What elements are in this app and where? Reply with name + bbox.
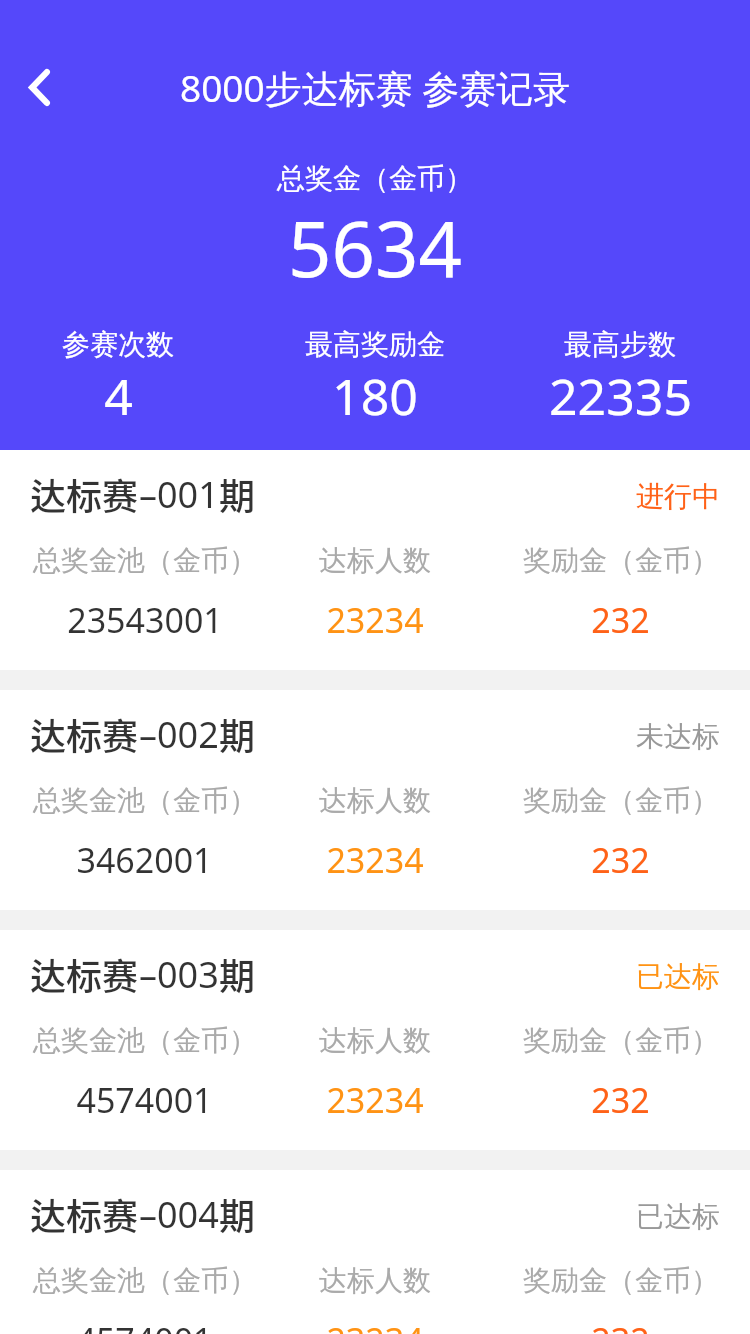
staticText: –002 <box>139 710 219 759</box>
button[interactable]: Back <box>6 45 72 129</box>
staticText: 180 <box>332 362 418 430</box>
staticText: 期 <box>219 468 256 520</box>
staticText: 232 <box>591 1317 650 1334</box>
staticText: –003 <box>139 950 219 999</box>
staticText: –001 <box>139 470 219 519</box>
staticText: 期 <box>219 948 256 1000</box>
staticText: 总奖金池（金币） <box>33 1263 257 1298</box>
staticText: 已达标 <box>636 959 720 994</box>
staticText: 232 <box>591 1077 650 1123</box>
staticText: 达标人数 <box>319 1023 431 1058</box>
staticText: 奖励金（金币） <box>523 783 719 818</box>
staticText: 达标人数 <box>319 783 431 818</box>
staticText: 总奖金池（金币） <box>33 543 257 578</box>
staticText: –004 <box>139 1190 219 1239</box>
staticText: 奖励金（金币） <box>523 1263 719 1298</box>
button[interactable]: 达标赛 <box>0 930 750 1150</box>
staticText: 期 <box>219 1188 256 1240</box>
staticText: 总奖金池（金币） <box>33 1023 257 1058</box>
button[interactable]: 达标赛 <box>0 1170 750 1334</box>
staticText: 232 <box>591 597 650 643</box>
staticText: 达标人数 <box>319 543 431 578</box>
staticText: 22335 <box>549 362 692 430</box>
staticText: 23234 <box>326 837 424 883</box>
staticText: 期 <box>219 708 256 760</box>
staticText: 已达标 <box>636 1199 720 1234</box>
staticText: 参赛次数 <box>62 327 174 362</box>
staticText: 未达标 <box>636 719 720 754</box>
staticText: 4574001 <box>76 1317 213 1334</box>
staticText: 奖励金（金币） <box>523 543 719 578</box>
staticText: 4574001 <box>76 1077 213 1123</box>
staticText: 5634 <box>0 196 750 300</box>
staticText: 4 <box>104 362 133 430</box>
staticText: 23543001 <box>67 597 223 643</box>
button[interactable]: 达标赛 <box>0 450 750 670</box>
staticText: 奖励金（金币） <box>523 1023 719 1058</box>
staticText: 总奖金（金币） <box>0 161 750 196</box>
staticText: 3462001 <box>76 837 213 883</box>
staticText: 23234 <box>326 1077 424 1123</box>
staticText: 达标赛 <box>30 708 139 760</box>
staticText: 进行中 <box>636 479 720 514</box>
staticText: 232 <box>591 837 650 883</box>
staticText: 达标赛 <box>30 948 139 1000</box>
staticText: 23234 <box>326 597 424 643</box>
staticText: 8000步达标赛 参赛记录 <box>180 62 571 113</box>
staticText: 达标赛 <box>30 468 139 520</box>
staticText: 最高奖励金 <box>305 327 445 362</box>
staticText: 达标赛 <box>30 1188 139 1240</box>
button[interactable]: 达标赛 <box>0 690 750 910</box>
staticText: 最高步数 <box>564 327 676 362</box>
staticText: 达标人数 <box>319 1263 431 1298</box>
staticText: 总奖金池（金币） <box>33 783 257 818</box>
staticText: 23234 <box>326 1317 424 1334</box>
